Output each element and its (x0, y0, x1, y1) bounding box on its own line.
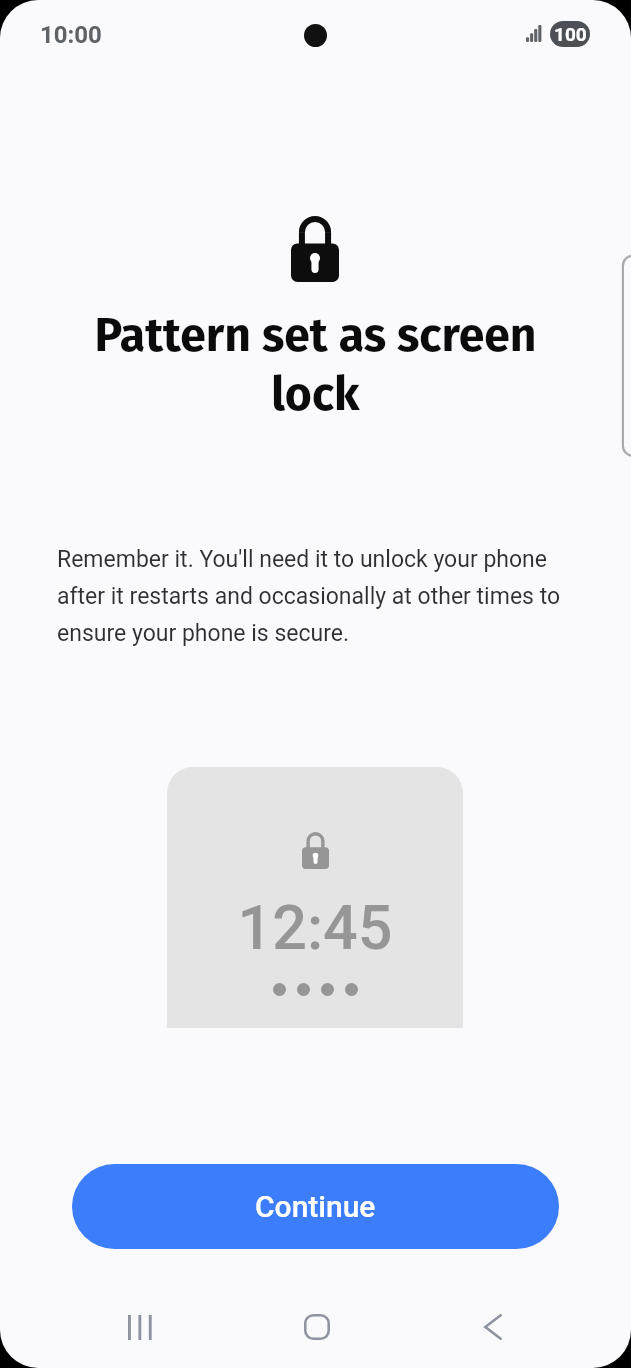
staticText: 100 (554, 23, 587, 45)
staticText: Pattern set as screen lock (80, 308, 551, 422)
button[interactable]: Recent apps (110, 1297, 170, 1357)
button[interactable]: Back (463, 1297, 523, 1357)
staticText: 10:00 (40, 21, 102, 49)
staticText: Remember it. You'll need it to unlock yo… (57, 546, 573, 647)
staticText: 12:45 (167, 892, 463, 963)
staticText: Continue (255, 1189, 376, 1224)
button[interactable]: Home (287, 1297, 347, 1357)
button[interactable]: Continue (72, 1164, 559, 1249)
